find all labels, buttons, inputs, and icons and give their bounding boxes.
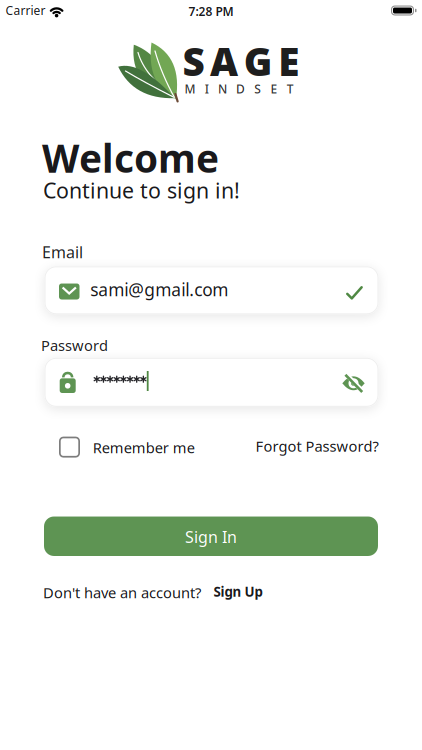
button[interactable]: sami@gmail.com (44, 266, 378, 314)
staticText: Welcome (42, 132, 219, 183)
staticText: Password (41, 335, 108, 355)
staticText: S (254, 81, 261, 97)
staticText: Continue to sign in! (43, 176, 240, 204)
button[interactable] (44, 358, 378, 407)
staticText: Remember me (93, 438, 195, 457)
staticText: M (184, 81, 195, 97)
staticText: N (218, 81, 227, 97)
staticText: S (182, 35, 204, 87)
staticText: Sign Up (213, 583, 262, 600)
staticText: E (270, 81, 277, 97)
staticText: G (244, 35, 273, 87)
button[interactable]: Remember me (59, 437, 195, 458)
staticText: Forgot Password? (255, 436, 378, 456)
staticText: Don't have an account? (43, 583, 201, 602)
staticText: Sign In (185, 526, 237, 547)
staticText: I (205, 81, 209, 97)
staticText: T (287, 81, 294, 97)
button[interactable]: Sign Up (213, 583, 262, 600)
staticText: 7:28 PM (188, 3, 233, 19)
button[interactable]: Sign In (44, 516, 378, 556)
staticText: E (278, 35, 299, 87)
staticText: D (236, 81, 245, 97)
button[interactable]: Forgot Password? (255, 436, 378, 456)
staticText: sami@gmail.com (90, 278, 228, 301)
staticText: Carrier (5, 2, 45, 18)
button[interactable]: Show password (342, 374, 365, 393)
staticText: A (210, 35, 238, 87)
staticText: Email (42, 241, 83, 263)
